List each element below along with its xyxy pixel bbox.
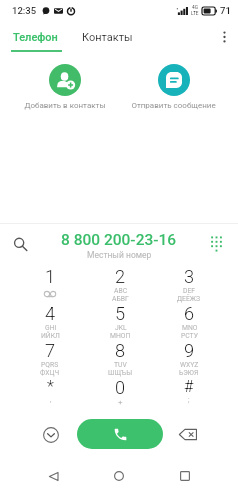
staticText: DEF <box>183 287 196 295</box>
staticText: 3 <box>184 266 195 287</box>
button[interactable]: Recents <box>169 460 201 492</box>
button[interactable]: Call <box>77 419 163 449</box>
button[interactable]: 4 <box>15 303 85 340</box>
staticText: 6 <box>184 303 195 324</box>
button[interactable]: Search <box>5 229 35 259</box>
staticText: , <box>50 396 52 404</box>
staticText: 0 <box>115 377 126 398</box>
button[interactable]: 5 <box>85 303 155 340</box>
staticText: WXYZ <box>180 361 199 369</box>
staticText: Телефон <box>13 31 58 44</box>
staticText: АБВГ <box>112 295 129 303</box>
staticText: PQRS <box>41 361 59 369</box>
staticText: 12:35 <box>12 5 37 16</box>
staticText: 7 <box>45 340 56 361</box>
staticText: Добавить в контакты <box>24 101 106 110</box>
staticText: ЬЭЮЯ <box>179 369 199 377</box>
staticText: 9 <box>184 340 195 361</box>
staticText: 1 <box>45 266 56 287</box>
staticText: 8 <box>115 340 126 361</box>
button[interactable]: Телефон <box>0 22 71 52</box>
button[interactable]: Dialpad <box>201 229 231 259</box>
button[interactable]: 1 <box>15 266 85 303</box>
staticText: Местный номер <box>87 250 152 260</box>
staticText: 5 <box>115 303 126 324</box>
button[interactable]: # <box>154 377 224 414</box>
staticText: Контакты <box>82 31 133 44</box>
staticText: ; <box>188 396 190 404</box>
staticText: TUV <box>114 361 127 369</box>
staticText: ШЩЪЫ <box>108 369 133 377</box>
button[interactable]: 3 <box>154 266 224 303</box>
staticText: 71 <box>220 5 231 16</box>
button[interactable]: 0 <box>85 377 155 414</box>
button[interactable]: Добавить в контакты <box>6 60 123 112</box>
staticText: 2 <box>115 266 126 287</box>
button[interactable]: Home <box>103 460 135 492</box>
staticText: ФХЦЧ <box>40 369 60 377</box>
staticText: 8 800 200-23-16 <box>61 231 177 249</box>
staticText: JKL <box>115 324 127 332</box>
button[interactable]: * <box>15 377 85 414</box>
staticText: ИЙКЛ <box>41 332 60 340</box>
button[interactable]: 8 <box>85 340 155 377</box>
staticText: 4 <box>45 303 56 324</box>
button[interactable]: Hide keypad <box>38 422 63 447</box>
button[interactable]: Контакты <box>71 22 143 52</box>
staticText: * <box>47 377 54 396</box>
staticText: МНОП <box>110 332 131 340</box>
button[interactable]: 2 <box>85 266 155 303</box>
staticText: 4G <box>192 5 198 11</box>
staticText: ABC <box>114 287 128 295</box>
staticText: + <box>118 398 123 407</box>
staticText: ДЕЁЖЗ <box>177 295 201 303</box>
staticText: LTE <box>191 11 199 17</box>
button[interactable]: More options <box>210 22 238 52</box>
button[interactable]: Отправить сообщение <box>115 60 232 112</box>
staticText: РСТУ <box>181 332 198 340</box>
staticText: GHI <box>45 324 57 332</box>
staticText: Отправить сообщение <box>131 101 216 110</box>
button[interactable]: 7 <box>15 340 85 377</box>
button[interactable]: 9 <box>154 340 224 377</box>
staticText: MNO <box>182 324 198 332</box>
button[interactable]: Back <box>37 460 69 492</box>
button[interactable]: 6 <box>154 303 224 340</box>
staticText: # <box>184 377 194 396</box>
button[interactable]: Backspace <box>176 422 200 446</box>
